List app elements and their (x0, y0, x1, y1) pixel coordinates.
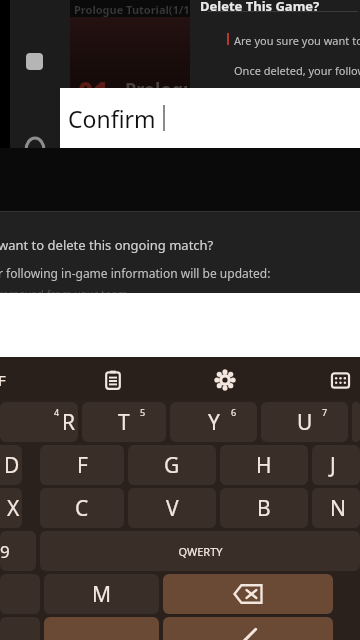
button[interactable]: QWERTY (40, 531, 360, 571)
button[interactable]: G (128, 445, 216, 485)
staticText: F (0, 370, 6, 390)
staticText: 7 (322, 406, 328, 418)
staticText: X (7, 494, 20, 523)
staticText: U (297, 408, 313, 437)
button[interactable]: B (220, 488, 308, 528)
button[interactable]: C (40, 488, 124, 528)
button[interactable]: Enter (163, 617, 333, 640)
button[interactable]: Settings (210, 365, 240, 395)
staticText: Y (208, 408, 220, 437)
button[interactable]: N (312, 488, 360, 528)
staticText: N (330, 494, 346, 523)
staticText: 4 (54, 406, 60, 418)
button[interactable]: J (312, 445, 360, 485)
staticText: M (92, 580, 112, 609)
button[interactable]: Backspace (163, 574, 333, 614)
staticText: Are you sure you want to (234, 33, 360, 48)
button[interactable]: H (220, 445, 308, 485)
staticText: 01 (78, 73, 109, 108)
staticText: 5 (140, 406, 146, 418)
staticText: • You will be removed fro (238, 86, 355, 100)
staticText: want to delete this ongoing match? (0, 236, 214, 254)
staticText: C (75, 494, 89, 523)
staticText: R (62, 408, 76, 437)
staticText: 9 (0, 540, 10, 563)
button[interactable]: Clipboard (98, 365, 128, 395)
staticText: QWERTY (178, 544, 223, 559)
staticText: Prologue T (125, 77, 221, 102)
button[interactable]: Keypad (325, 365, 355, 395)
button[interactable]: X (0, 488, 22, 528)
button[interactable] (44, 617, 159, 640)
staticText: r following in-game information will be … (0, 265, 271, 281)
button[interactable]: Confirm (60, 88, 360, 148)
staticText: D (4, 451, 20, 480)
staticText: T (118, 408, 130, 437)
staticText: G (164, 451, 180, 480)
staticText: B (257, 494, 271, 523)
button[interactable]: R (0, 402, 78, 442)
button[interactable]: T (82, 402, 166, 442)
staticText: removed from your team (0, 286, 128, 301)
button[interactable]: Select (26, 53, 43, 70)
button[interactable]: M (44, 574, 159, 614)
staticText: 6 (231, 406, 237, 418)
staticText: Once deleted, your followi (234, 63, 360, 78)
button[interactable]: V (128, 488, 216, 528)
button[interactable]: Y (170, 402, 257, 442)
button[interactable]: D (0, 445, 22, 485)
button[interactable]: U (261, 402, 348, 442)
staticText: Confirm (68, 103, 156, 134)
staticText: Delete This Game? (200, 0, 320, 15)
staticText: F (77, 451, 88, 480)
button[interactable]: 9 (0, 531, 36, 571)
staticText: J (330, 451, 336, 480)
staticText: H (256, 451, 272, 480)
staticText: Prologue Tutorial(1/1) (74, 2, 194, 17)
button[interactable]: F (40, 445, 124, 485)
staticText: V (166, 494, 179, 523)
